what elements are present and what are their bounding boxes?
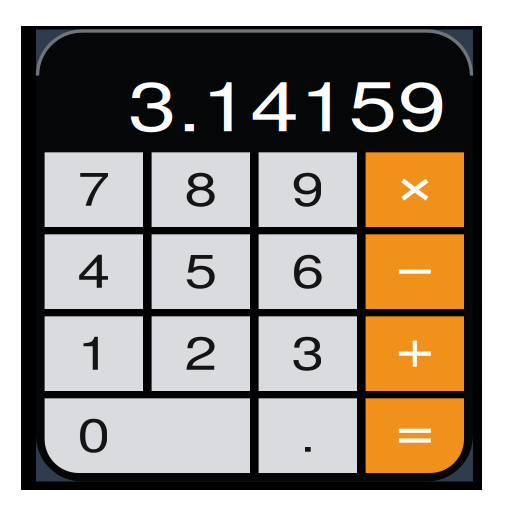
button[interactable]: 3 [259, 316, 357, 391]
staticText: 5 [188, 234, 214, 301]
staticText: 6 [295, 234, 321, 301]
button[interactable] [366, 152, 464, 227]
staticText: . [301, 398, 314, 465]
button[interactable] [366, 398, 464, 473]
button[interactable] [366, 234, 464, 309]
button[interactable]: . [259, 398, 357, 473]
button[interactable]: 7 [45, 152, 143, 227]
staticText: 7 [81, 152, 107, 219]
button[interactable]: 9 [259, 152, 357, 227]
staticText: 0 [81, 398, 107, 465]
button[interactable]: 8 [152, 152, 250, 227]
button[interactable]: 0 [45, 398, 250, 473]
button[interactable]: 5 [152, 234, 250, 309]
staticText: 8 [188, 152, 214, 219]
button[interactable] [366, 316, 464, 391]
staticText: 3 [295, 316, 321, 383]
staticText: 4 [81, 234, 107, 301]
button[interactable]: 6 [259, 234, 357, 309]
staticText: 3.14159 [161, 52, 414, 151]
staticText: 2 [188, 316, 214, 383]
button[interactable]: 4 [45, 234, 143, 309]
button[interactable]: 2 [152, 316, 250, 391]
button[interactable]: 1 [45, 316, 143, 391]
staticText: 9 [295, 152, 321, 219]
staticText: 1 [81, 316, 107, 383]
